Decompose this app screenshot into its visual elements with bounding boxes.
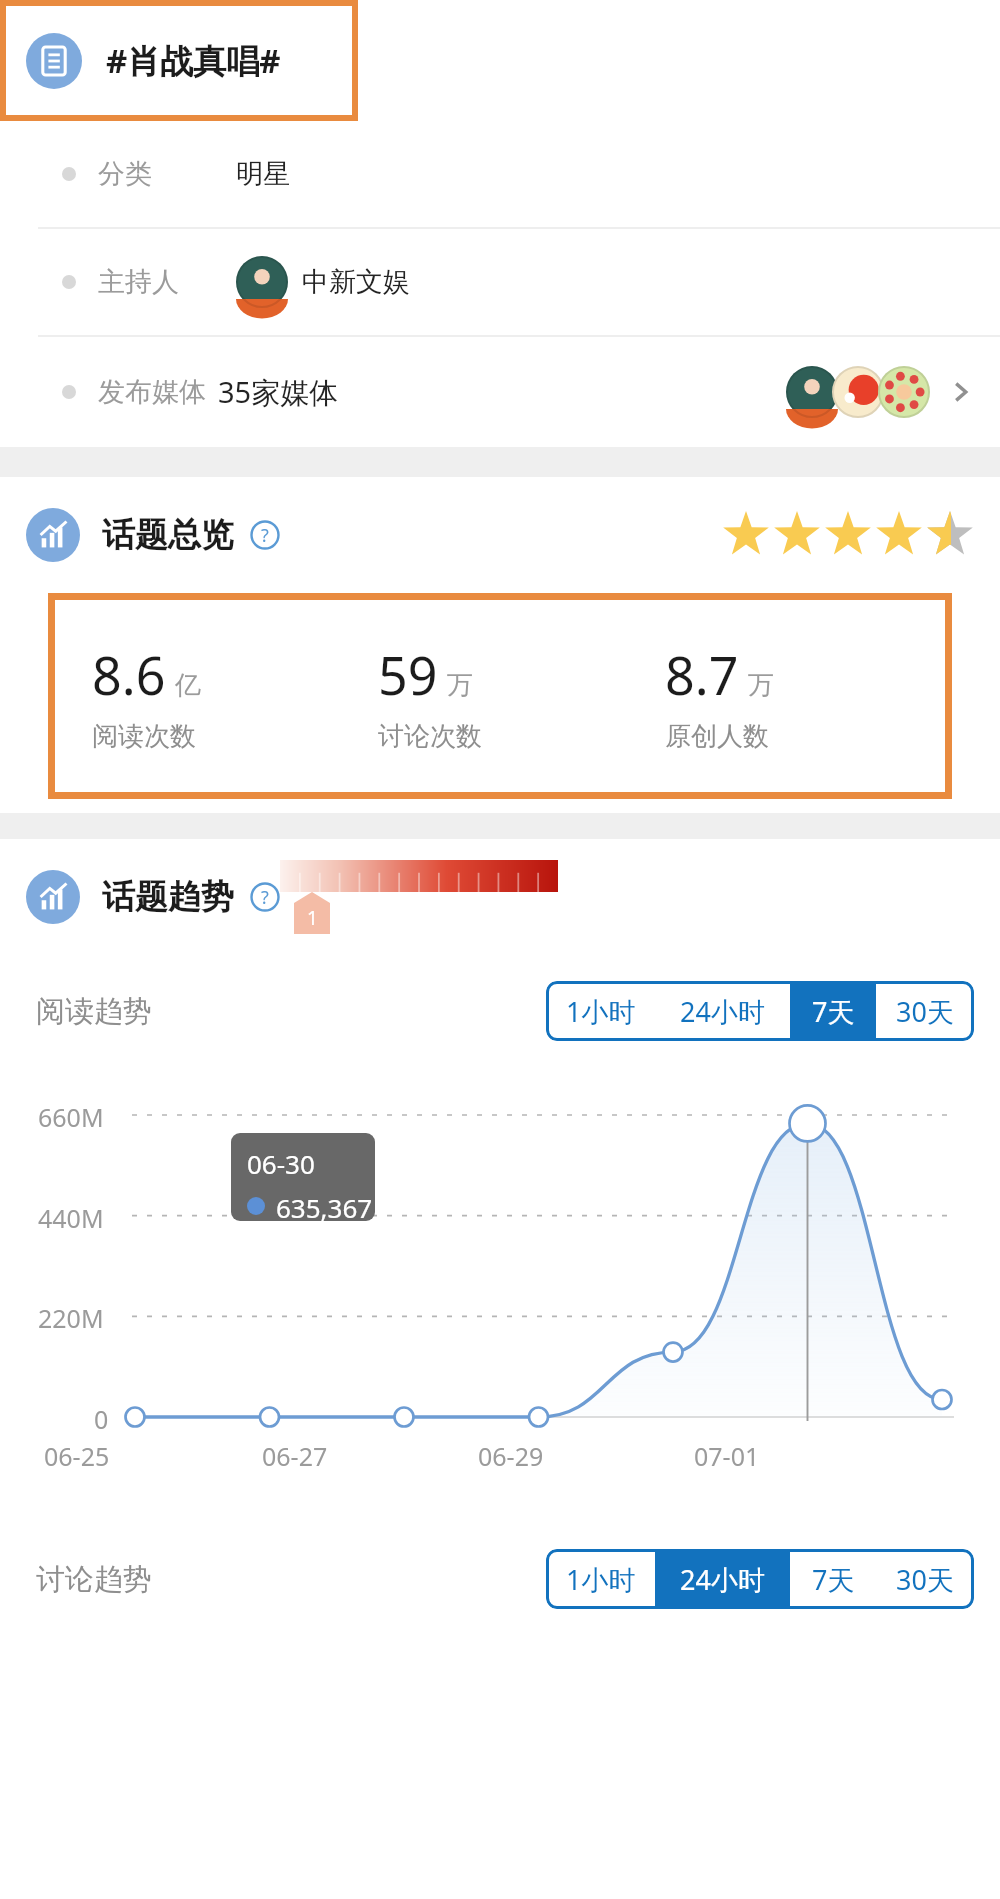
staticText: 440M bbox=[38, 1201, 104, 1235]
staticText: 7天 bbox=[812, 993, 855, 1030]
staticText: 分类 bbox=[98, 157, 152, 191]
button[interactable]: 说明 bbox=[250, 882, 280, 912]
button[interactable]: 查看媒体 bbox=[946, 377, 976, 407]
button[interactable]: 7天 bbox=[790, 981, 876, 1041]
button[interactable]: 30天 bbox=[876, 981, 974, 1041]
staticText: 06-25 bbox=[44, 1439, 110, 1473]
staticText: 06-29 bbox=[478, 1439, 544, 1473]
staticText: 讨论趋势 bbox=[36, 1561, 152, 1598]
staticText: 讨论次数 bbox=[378, 720, 482, 753]
staticText: 主持人 bbox=[98, 265, 179, 299]
staticText: 59 bbox=[378, 639, 438, 710]
staticText: 8.6 bbox=[92, 639, 166, 710]
button[interactable]: 7天 bbox=[790, 1549, 876, 1609]
staticText: 635,367,476 bbox=[276, 1190, 375, 1221]
staticText: 24小时 bbox=[680, 993, 765, 1030]
staticText: 30天 bbox=[896, 1561, 954, 1598]
staticText: 原创人数 bbox=[665, 720, 769, 753]
staticText: 万 bbox=[447, 669, 473, 702]
staticText: 06-30 bbox=[247, 1146, 315, 1181]
staticText: 亿 bbox=[175, 669, 201, 702]
staticText: 话题趋势 bbox=[102, 876, 234, 918]
staticText: 中新文娱 bbox=[302, 265, 410, 299]
staticText: 07-01 bbox=[694, 1439, 760, 1473]
staticText: 06-27 bbox=[262, 1439, 328, 1473]
staticText: ? bbox=[261, 885, 269, 910]
staticText: 1 bbox=[307, 905, 318, 931]
staticText: 8.7 bbox=[665, 639, 739, 710]
button[interactable]: 说明 bbox=[250, 520, 280, 550]
button[interactable]: 分类 bbox=[0, 121, 1000, 227]
staticText: 万 bbox=[748, 669, 774, 702]
button[interactable]: 主持人 bbox=[0, 229, 1000, 335]
button[interactable]: #肖战真唱# bbox=[26, 0, 1000, 121]
button[interactable]: 24小时 bbox=[655, 981, 790, 1041]
staticText: 1小时 bbox=[566, 1561, 636, 1598]
staticText: 1小时 bbox=[566, 993, 636, 1030]
staticText: 话题总览 bbox=[102, 514, 234, 556]
button[interactable]: 发布媒体 bbox=[0, 337, 1000, 447]
staticText: 阅读趋势 bbox=[36, 993, 152, 1030]
button[interactable]: 24小时 bbox=[655, 1549, 790, 1609]
button[interactable]: 30天 bbox=[876, 1549, 974, 1609]
staticText: #肖战真唱# bbox=[106, 38, 281, 83]
staticText: ? bbox=[261, 523, 269, 548]
staticText: 7天 bbox=[812, 1561, 855, 1598]
staticText: 24小时 bbox=[680, 1561, 765, 1598]
staticText: 发布媒体 bbox=[98, 375, 206, 409]
button[interactable]: 1小时 bbox=[546, 981, 655, 1041]
button[interactable]: 1小时 bbox=[546, 1549, 655, 1609]
staticText: 0 bbox=[94, 1402, 109, 1436]
staticText: 220M bbox=[38, 1301, 104, 1335]
staticText: 660M bbox=[38, 1100, 104, 1134]
staticText: 35家媒体 bbox=[218, 372, 339, 412]
staticText: 明星 bbox=[236, 157, 290, 191]
staticText: 30天 bbox=[896, 993, 954, 1030]
button[interactable]: 8.6 bbox=[48, 593, 952, 799]
staticText: 阅读次数 bbox=[92, 720, 196, 753]
